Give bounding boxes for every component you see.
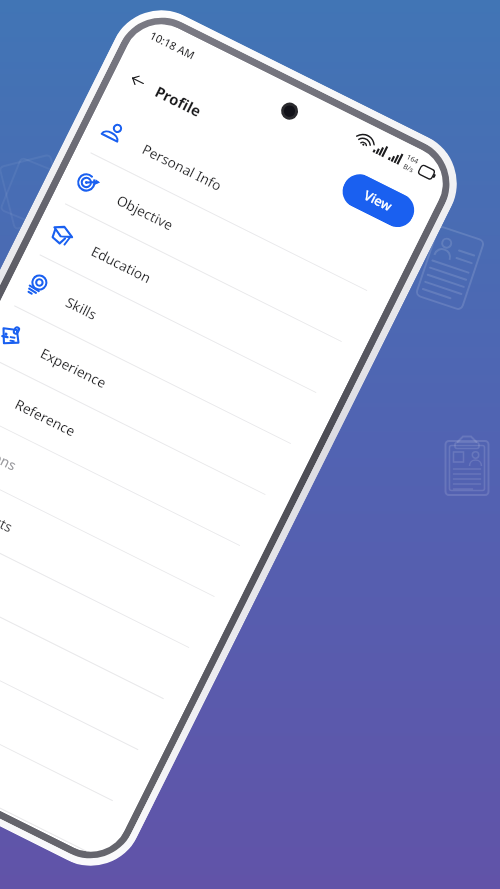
button[interactable]: Experience — [0, 299, 312, 505]
staticText: 164 — [405, 152, 421, 167]
button[interactable] — [0, 657, 134, 862]
staticText: Objective — [114, 190, 177, 234]
staticText: Education — [88, 241, 155, 287]
staticText: 10:18 AM — [147, 27, 198, 63]
button[interactable]: Certifications — [0, 401, 261, 607]
staticText: Skills — [63, 292, 101, 324]
button[interactable]: Projects — [0, 452, 236, 658]
staticText: B/s — [401, 162, 415, 176]
staticText: Projects — [0, 496, 16, 536]
button[interactable]: Objective — [52, 146, 388, 352]
staticText: Certifications — [0, 419, 20, 475]
button[interactable]: Skills — [1, 248, 337, 454]
button[interactable] — [0, 606, 159, 811]
staticText: View — [361, 186, 396, 215]
button[interactable]: Reference — [0, 350, 287, 556]
button[interactable]: Back — [118, 60, 158, 101]
button[interactable]: Education — [26, 197, 363, 403]
staticText: Personal Info — [139, 139, 225, 195]
button[interactable] — [0, 708, 109, 865]
button[interactable] — [0, 555, 185, 760]
button[interactable] — [0, 504, 210, 709]
button[interactable]: View — [337, 168, 420, 233]
button[interactable]: Personal Info — [77, 95, 414, 301]
staticText: Profile — [152, 81, 205, 121]
staticText: Experience — [37, 343, 110, 392]
staticText: Reference — [12, 394, 79, 441]
